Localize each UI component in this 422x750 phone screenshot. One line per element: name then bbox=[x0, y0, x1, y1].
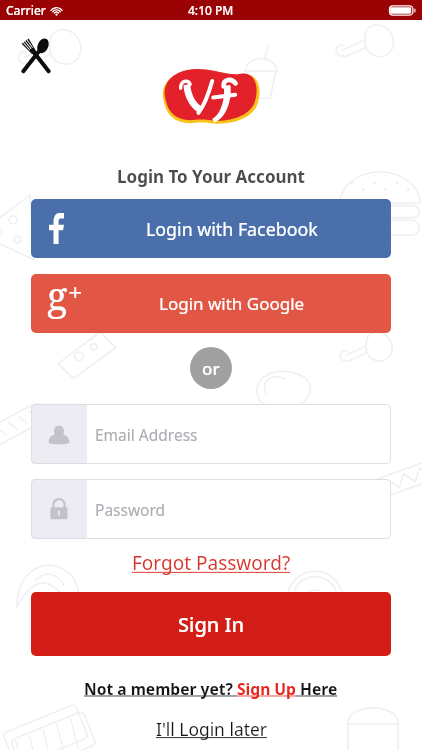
staticText: Sign In bbox=[178, 611, 245, 638]
button[interactable]: Menu bbox=[15, 34, 57, 76]
button[interactable]: Password bbox=[31, 479, 391, 539]
button[interactable]: Email Address bbox=[31, 404, 391, 464]
staticText: g bbox=[47, 274, 68, 321]
button[interactable]: Login with Facebook bbox=[31, 199, 391, 258]
staticText: Password bbox=[95, 499, 166, 520]
button[interactable]: g bbox=[31, 274, 391, 333]
staticText: Login To Your Account bbox=[0, 165, 422, 188]
button[interactable]: Forgot Password? bbox=[132, 550, 291, 576]
button[interactable]: Sign In bbox=[31, 592, 391, 656]
button[interactable]: Not a member yet? Sign Up Here bbox=[84, 678, 338, 699]
staticText: + bbox=[68, 274, 83, 309]
staticText: Login with Google bbox=[159, 292, 305, 315]
staticText: Login with Facebook bbox=[146, 217, 318, 241]
staticText: 4:10 PM bbox=[188, 2, 234, 18]
staticText: Email Address bbox=[95, 424, 198, 445]
staticText: or bbox=[202, 357, 220, 380]
button[interactable]: I'll Login later bbox=[156, 717, 267, 741]
staticText: Carrier bbox=[6, 2, 46, 18]
